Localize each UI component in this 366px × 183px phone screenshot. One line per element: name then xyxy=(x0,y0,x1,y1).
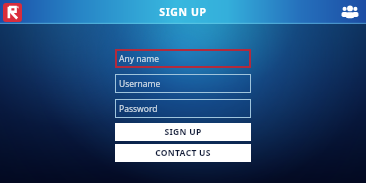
staticText: SIGN UP xyxy=(164,126,202,138)
button[interactable]: Username xyxy=(115,74,251,93)
staticText: Password xyxy=(119,103,158,115)
button[interactable]: Password xyxy=(115,99,251,118)
button[interactable]: Members xyxy=(339,1,361,23)
staticText: CONTACT US xyxy=(155,147,211,159)
button[interactable]: SIGN UP xyxy=(115,123,251,141)
button[interactable]: App logo xyxy=(3,3,22,22)
button[interactable]: Any name xyxy=(115,49,251,68)
staticText: Any name xyxy=(119,53,159,65)
button[interactable]: CONTACT US xyxy=(115,144,251,162)
staticText: Username xyxy=(119,78,161,90)
staticText: SIGN UP xyxy=(159,5,207,19)
